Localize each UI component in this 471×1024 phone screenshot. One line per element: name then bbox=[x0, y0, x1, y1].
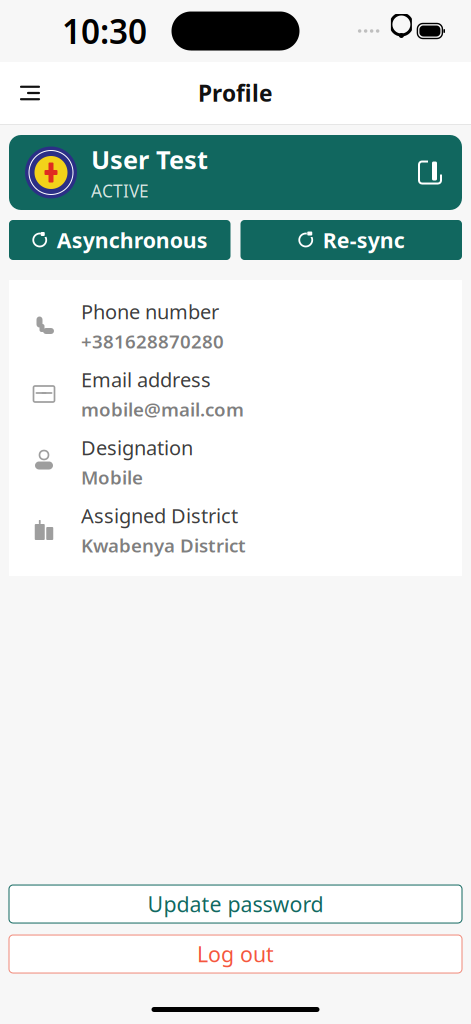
staticText: 10:30 bbox=[62, 9, 147, 53]
button[interactable]: Re-sync bbox=[240, 220, 462, 260]
staticText: Email address bbox=[81, 366, 211, 393]
staticText: mobile@mail.com bbox=[81, 397, 244, 422]
staticText: Update password bbox=[147, 890, 323, 918]
button[interactable]: Menu bbox=[8, 71, 52, 115]
staticText: Log out bbox=[197, 940, 274, 968]
staticText: Assigned District bbox=[81, 502, 238, 529]
button[interactable]: Edit profile bbox=[408, 150, 452, 194]
staticText: Phone number bbox=[81, 298, 219, 325]
button[interactable]: Asynchronous bbox=[9, 220, 230, 260]
staticText: Designation bbox=[81, 434, 193, 461]
staticText: Re-sync bbox=[323, 226, 405, 254]
staticText: Mobile bbox=[81, 465, 143, 490]
button[interactable]: Update password bbox=[9, 885, 462, 923]
staticText: Kwabenya District bbox=[81, 533, 246, 558]
staticText: Profile bbox=[198, 78, 273, 108]
staticText: User Test bbox=[91, 143, 208, 176]
staticText: Asynchronous bbox=[57, 226, 208, 254]
staticText: ACTIVE bbox=[91, 179, 149, 202]
button[interactable]: Log out bbox=[9, 935, 462, 973]
staticText: +381628870280 bbox=[81, 329, 224, 354]
